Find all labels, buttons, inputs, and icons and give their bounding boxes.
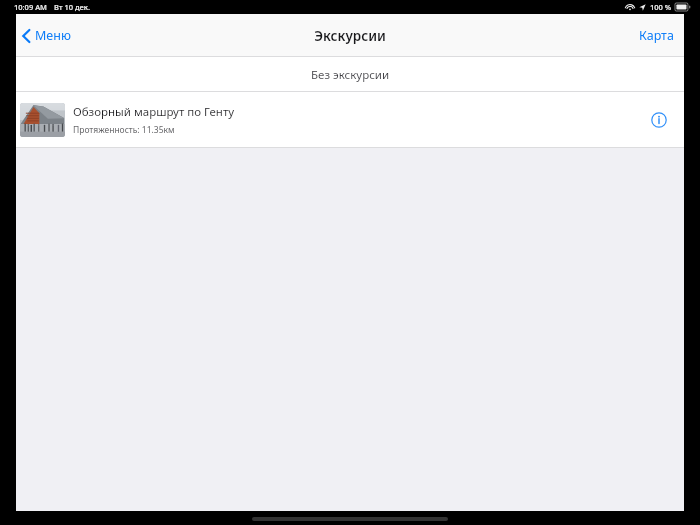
staticText: Экскурсии (314, 27, 386, 45)
staticText: Меню (35, 27, 71, 44)
button[interactable]: Обзорный маршрут по Генту (16, 92, 684, 148)
button[interactable]: Карта (629, 19, 684, 52)
staticText: 100 % (650, 2, 672, 12)
button[interactable]: Подробнее об экскурсии (642, 103, 676, 137)
staticText: Вт 10 дек. (54, 2, 90, 12)
staticText: Обзорный маршрут по Генту (73, 104, 235, 120)
staticText: Протяженность: 11.35км (73, 124, 175, 136)
staticText: Без экскурсии (311, 67, 390, 83)
staticText: 10:09 AM (14, 2, 47, 12)
staticText: Карта (639, 27, 674, 44)
button[interactable]: Меню (16, 21, 81, 50)
